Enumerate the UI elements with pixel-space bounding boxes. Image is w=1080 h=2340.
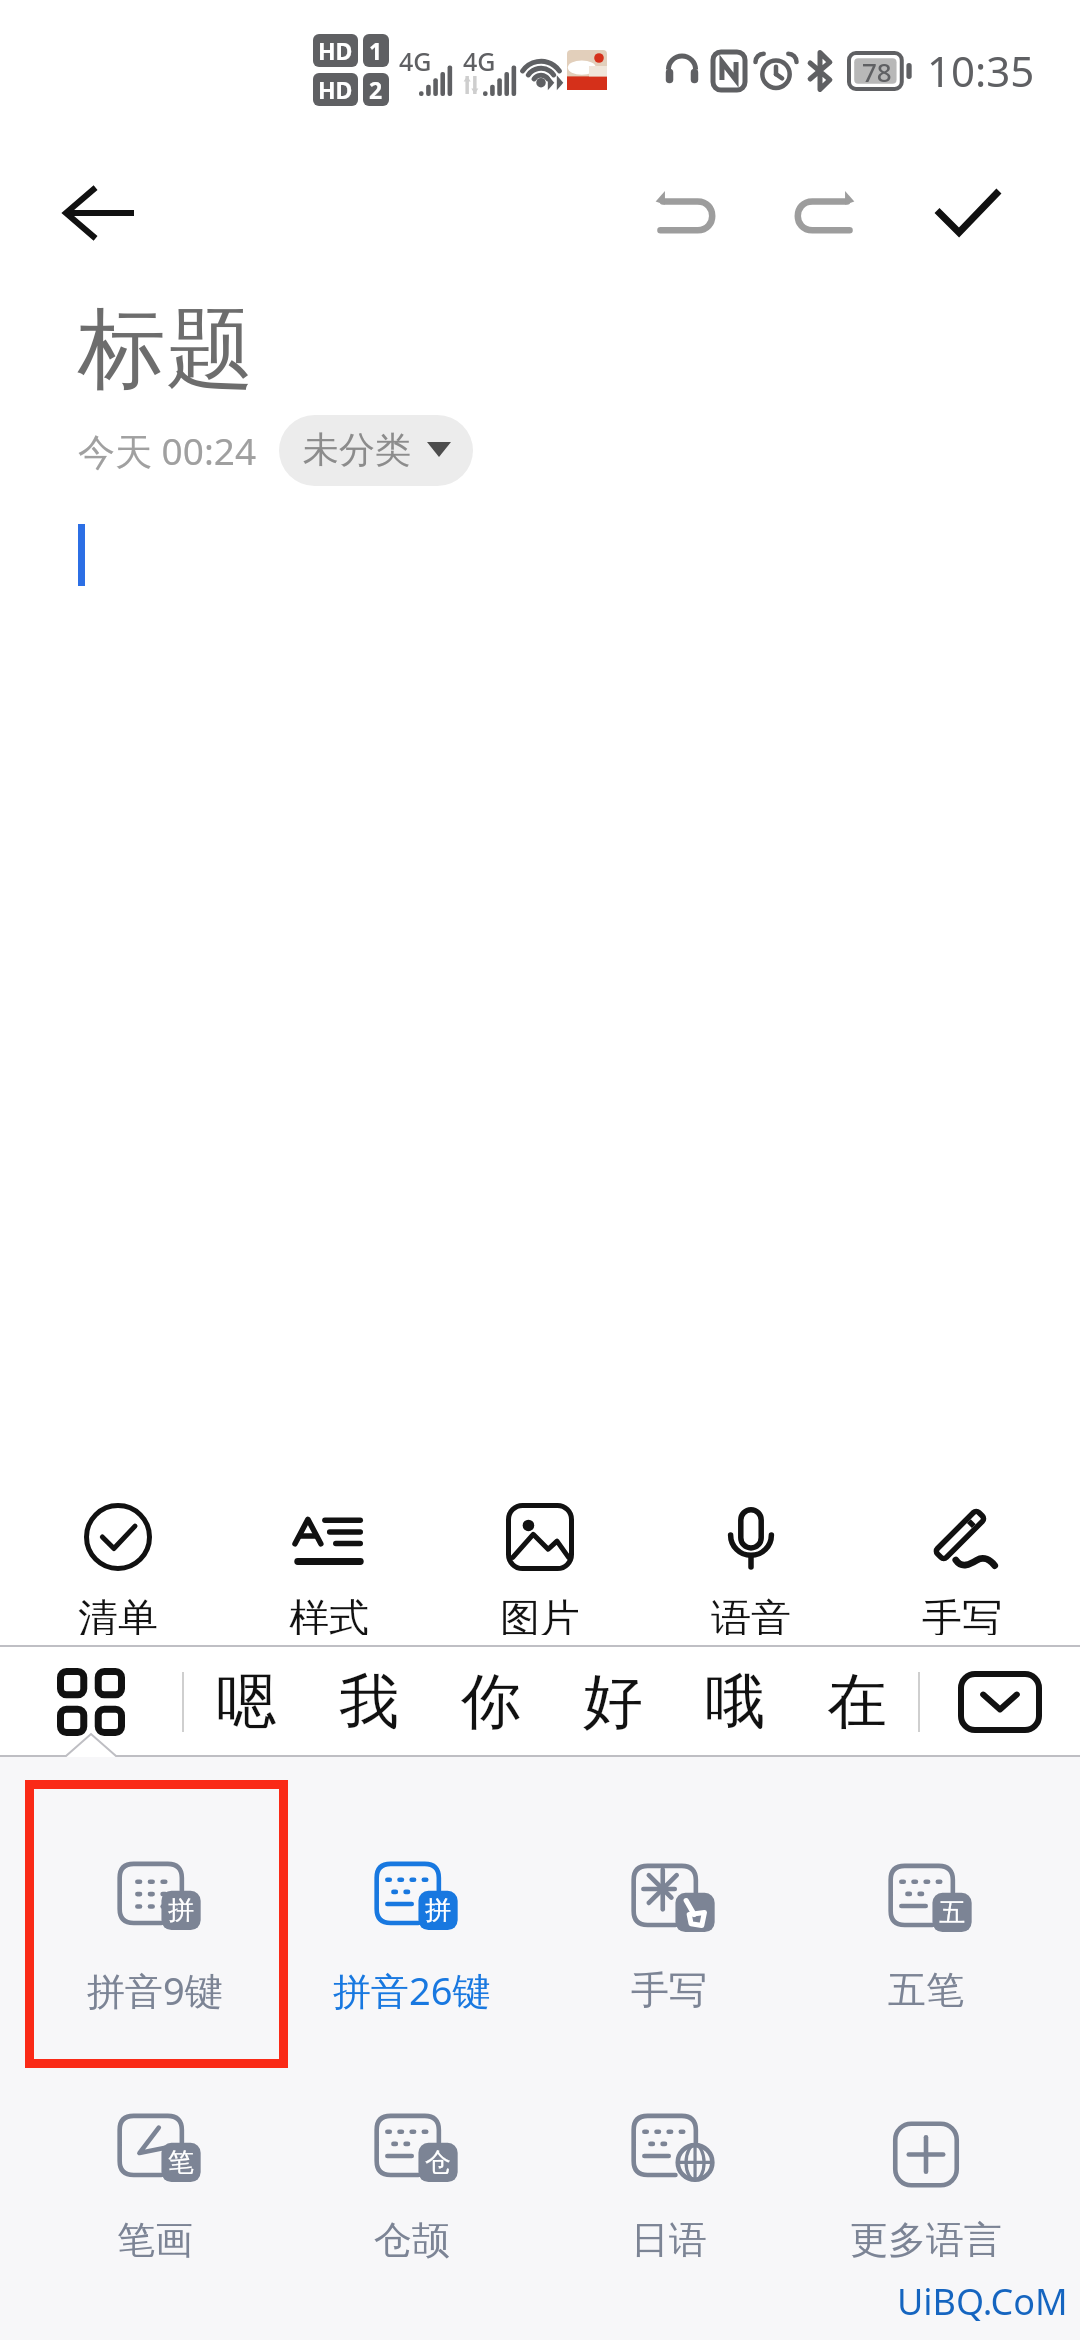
button[interactable]: 样式 [236, 1455, 422, 1645]
staticText: 今天 00:24 [78, 425, 257, 476]
staticText: 笔画 [117, 2216, 193, 2264]
staticText: 拼 [168, 1894, 194, 1927]
button[interactable]: 五 [797, 1757, 1054, 2057]
button[interactable]: 清单 [25, 1455, 211, 1645]
staticText: 好 [583, 1664, 643, 1740]
staticText: 五笔 [888, 1966, 964, 2014]
button[interactable]: Undo [624, 153, 744, 273]
staticText: 拼 [425, 1894, 451, 1927]
staticText: 1 [369, 35, 383, 66]
button[interactable]: Done [908, 153, 1028, 273]
staticText: 未分类 [303, 427, 411, 472]
staticText: 更多语言 [850, 2216, 1002, 2264]
button[interactable]: 哦 [674, 1647, 796, 1757]
staticText: 我 [339, 1664, 399, 1740]
staticText: 清单 [78, 1593, 158, 1635]
button[interactable]: Redo [766, 153, 886, 273]
staticText: 4G [399, 44, 432, 78]
staticText: 手写 [631, 1966, 707, 2014]
staticText: 2 [369, 74, 383, 105]
staticText: 嗯 [216, 1664, 276, 1740]
staticText: 图片 [500, 1593, 580, 1635]
staticText: 你 [461, 1664, 521, 1740]
button[interactable]: 拼 [283, 1757, 540, 2057]
button[interactable]: Collapse keyboard [920, 1647, 1080, 1757]
staticText: HD [318, 35, 353, 66]
staticText: 在 [827, 1664, 887, 1740]
staticText: 哦 [705, 1664, 765, 1740]
staticText: 日语 [631, 2216, 707, 2264]
staticText: 样式 [289, 1593, 369, 1635]
button[interactable]: 更多语言 [797, 2057, 1054, 2257]
button[interactable]: 笔 [26, 2057, 283, 2257]
staticText: 标题 [78, 294, 254, 405]
button[interactable]: 手写 [540, 1757, 797, 2057]
staticText: 仓 [425, 2146, 451, 2179]
button[interactable]: Back [40, 153, 160, 273]
button[interactable]: 我 [307, 1647, 430, 1757]
button[interactable]: Keyboard layouts [0, 1647, 182, 1757]
staticText: 五 [939, 1896, 965, 1929]
staticText: 10:35 [927, 42, 1035, 99]
button[interactable]: 嗯 [184, 1647, 307, 1757]
staticText: UiBQ.CoM [897, 2277, 1068, 2326]
button[interactable]: 未分类 [279, 415, 473, 486]
staticText: HD [318, 74, 353, 105]
button[interactable]: 好 [552, 1647, 674, 1757]
button[interactable]: 语音 [658, 1455, 844, 1645]
button[interactable]: 在 [796, 1647, 918, 1757]
button[interactable]: 图片 [447, 1455, 633, 1645]
staticText: 笔 [168, 2146, 194, 2179]
staticText: 仓颉 [374, 2216, 450, 2264]
button[interactable]: 拼 [26, 1757, 283, 2057]
staticText: 拼音9键 [87, 1964, 223, 2016]
staticText: 手写 [922, 1593, 1002, 1635]
staticText: 拼音26键 [333, 1964, 491, 2016]
button[interactable]: 你 [430, 1647, 552, 1757]
button[interactable]: 手写 [869, 1455, 1055, 1645]
staticText: 4G [463, 44, 496, 78]
button[interactable]: 仓 [283, 2057, 540, 2257]
staticText: 78 [862, 54, 892, 89]
button[interactable]: 日语 [540, 2057, 797, 2257]
staticText: 语音 [711, 1593, 791, 1635]
